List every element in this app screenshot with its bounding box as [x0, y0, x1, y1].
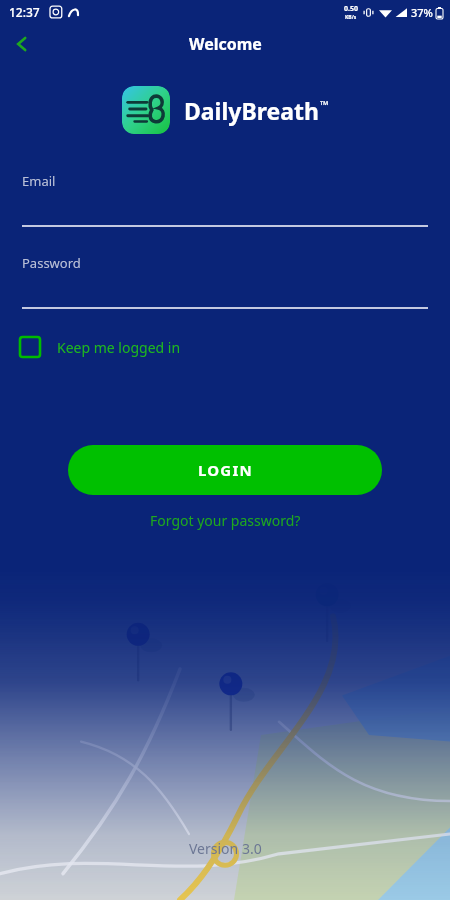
- staticText: Forgot your password?: [150, 511, 301, 530]
- button[interactable]: Forgot your password?: [140, 507, 311, 534]
- staticText: Version 3.0: [189, 839, 262, 858]
- staticText: Welcome: [189, 33, 262, 55]
- staticText: ™: [320, 97, 329, 112]
- staticText: Password: [22, 254, 81, 272]
- staticText: LOGIN: [198, 460, 253, 480]
- staticText: Email: [22, 172, 56, 190]
- staticText: 12:37: [9, 4, 40, 20]
- staticText: DailyBreath: [184, 95, 320, 126]
- button[interactable]: LOGIN: [68, 445, 382, 495]
- staticText: KB/s: [345, 14, 357, 21]
- staticText: 37%: [411, 5, 433, 20]
- button[interactable]: Back: [0, 24, 44, 64]
- staticText: 0.50: [344, 4, 358, 14]
- button[interactable]: Email: [22, 172, 428, 227]
- staticText: Keep me logged in: [57, 338, 181, 357]
- button[interactable]: Password: [22, 254, 428, 309]
- button[interactable]: Keep me logged in: [16, 333, 185, 361]
